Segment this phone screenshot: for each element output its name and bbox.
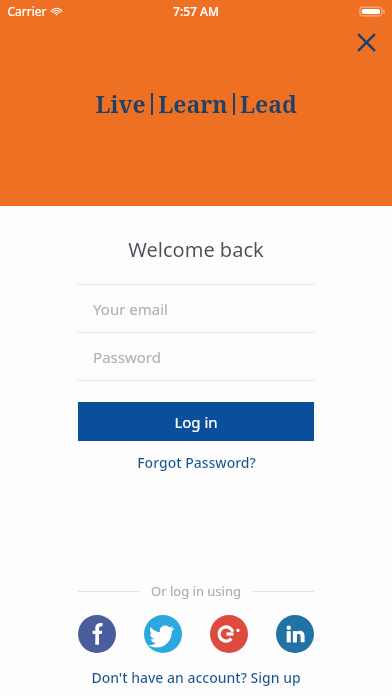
staticText: Log in (174, 412, 218, 432)
staticText: Don't have an account? Sign up (91, 668, 301, 687)
button[interactable]: Log in with Facebook (78, 615, 116, 653)
staticText: Welcome back (128, 236, 264, 263)
button[interactable]: Forgot Password? (129, 450, 264, 475)
staticText: Forgot Password? (137, 453, 256, 472)
staticText: Lead (240, 88, 297, 119)
button[interactable]: Log in with Twitter (144, 615, 182, 653)
staticText: Or log in using (151, 582, 241, 600)
staticText: 7:57 AM (173, 3, 219, 19)
staticText: Password (93, 347, 161, 367)
staticText: Carrier (7, 3, 47, 19)
staticText: Your email (93, 299, 168, 319)
staticText: Learn (158, 88, 228, 119)
button[interactable]: Log in with LinkedIn (276, 615, 314, 653)
button[interactable]: Close (346, 22, 386, 62)
button[interactable]: Password (78, 333, 314, 380)
button[interactable]: Log in (78, 402, 314, 441)
staticText: Live (95, 88, 146, 119)
button[interactable]: Your email (78, 285, 314, 332)
button[interactable]: Log in with Google Plus (210, 615, 248, 653)
button[interactable]: Don't have an account? Sign up (81, 665, 311, 690)
